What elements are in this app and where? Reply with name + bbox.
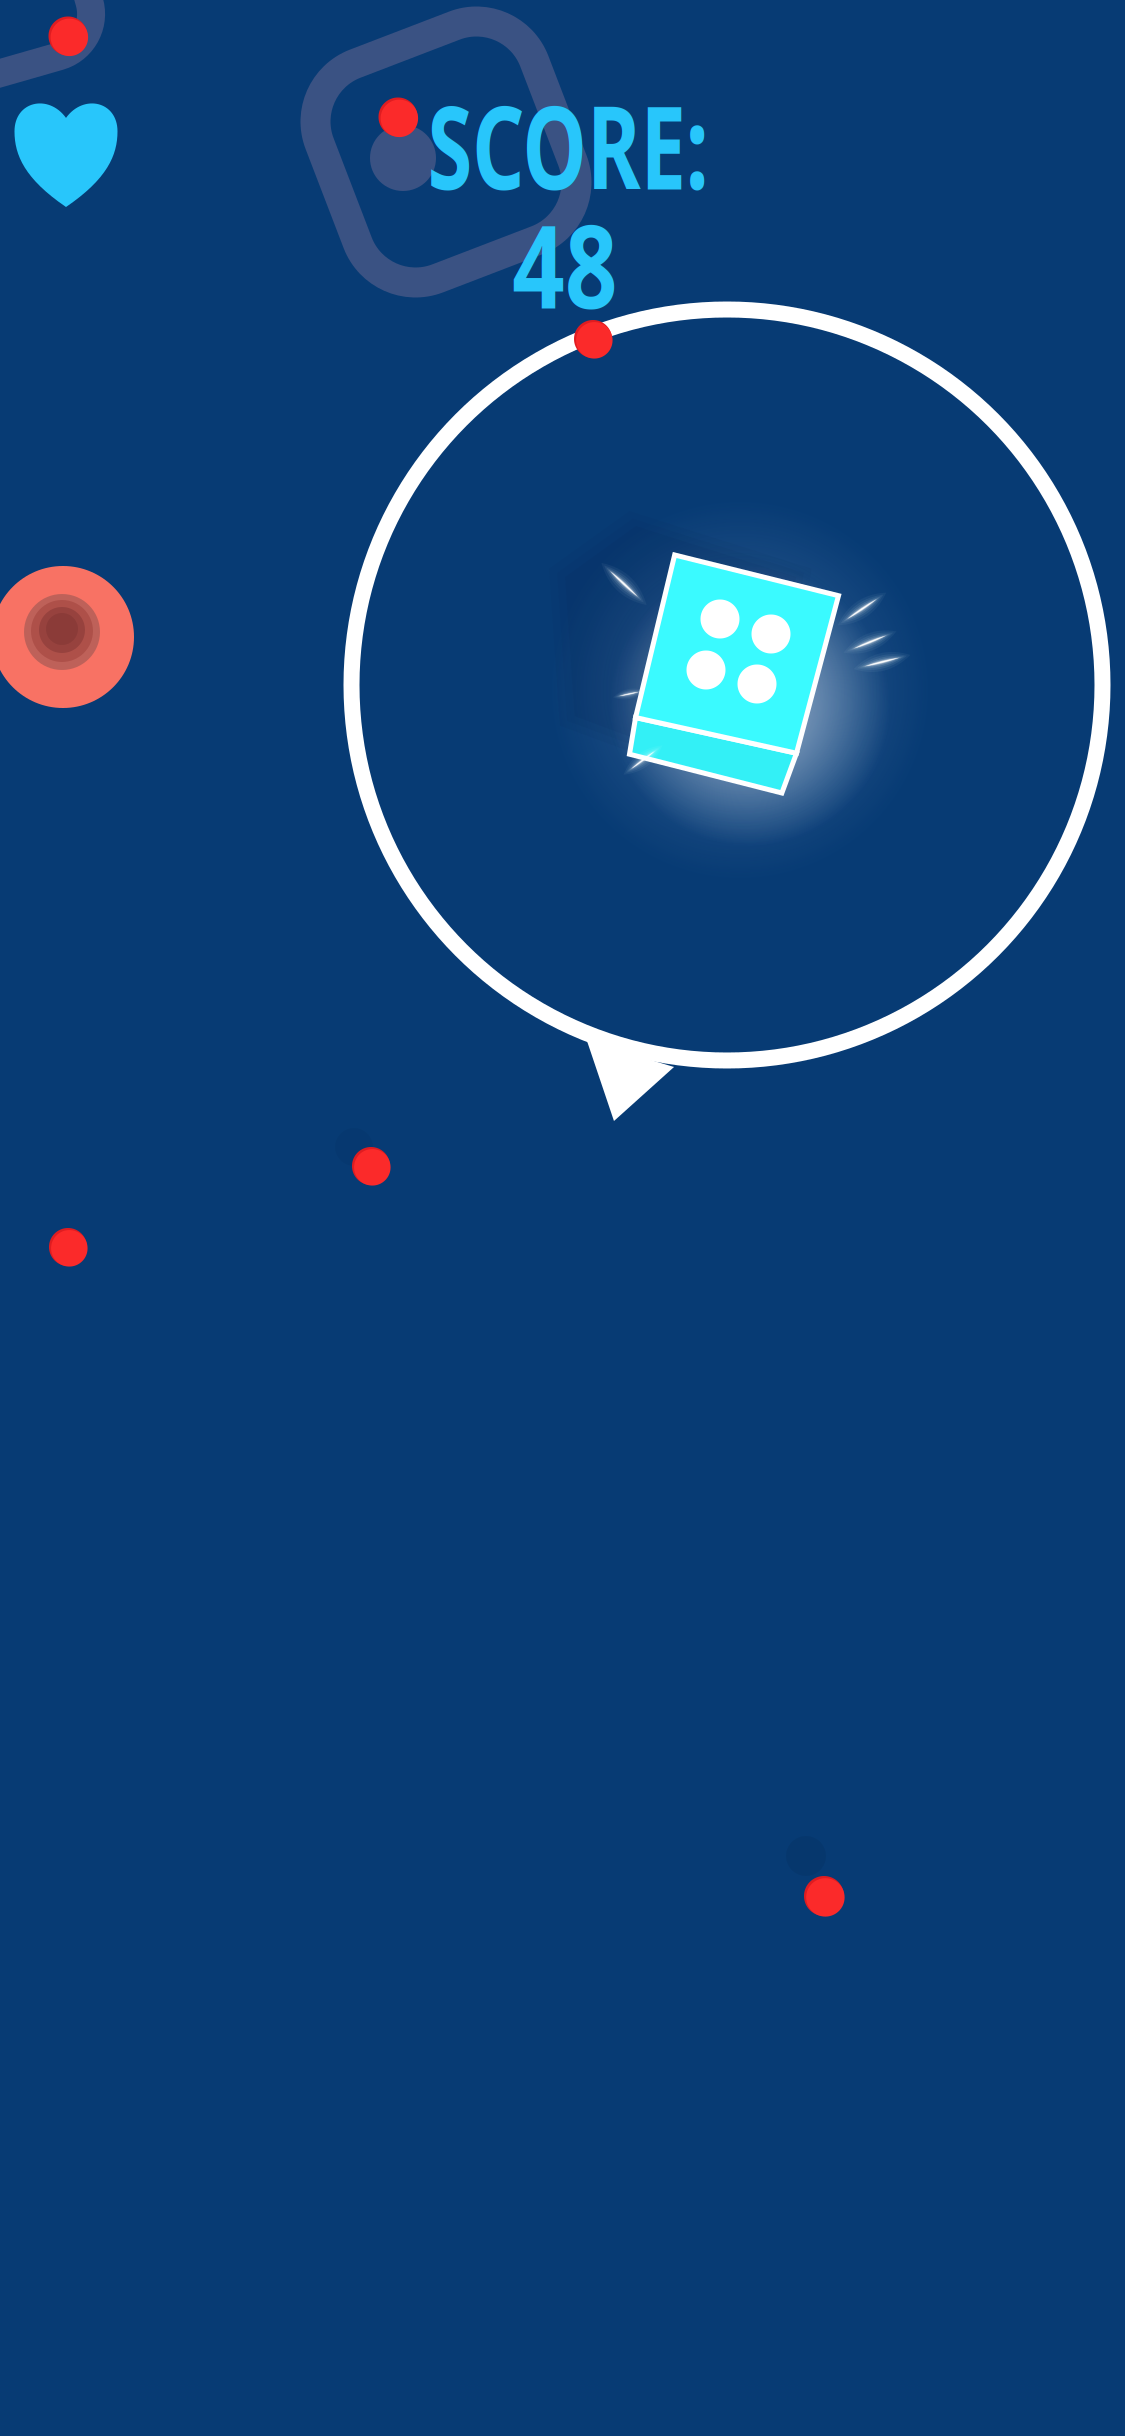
button[interactable]: Roll the die bbox=[351, 309, 1102, 1060]
staticText: 48 bbox=[499, 188, 631, 340]
staticText: SCORE: bbox=[370, 69, 766, 221]
